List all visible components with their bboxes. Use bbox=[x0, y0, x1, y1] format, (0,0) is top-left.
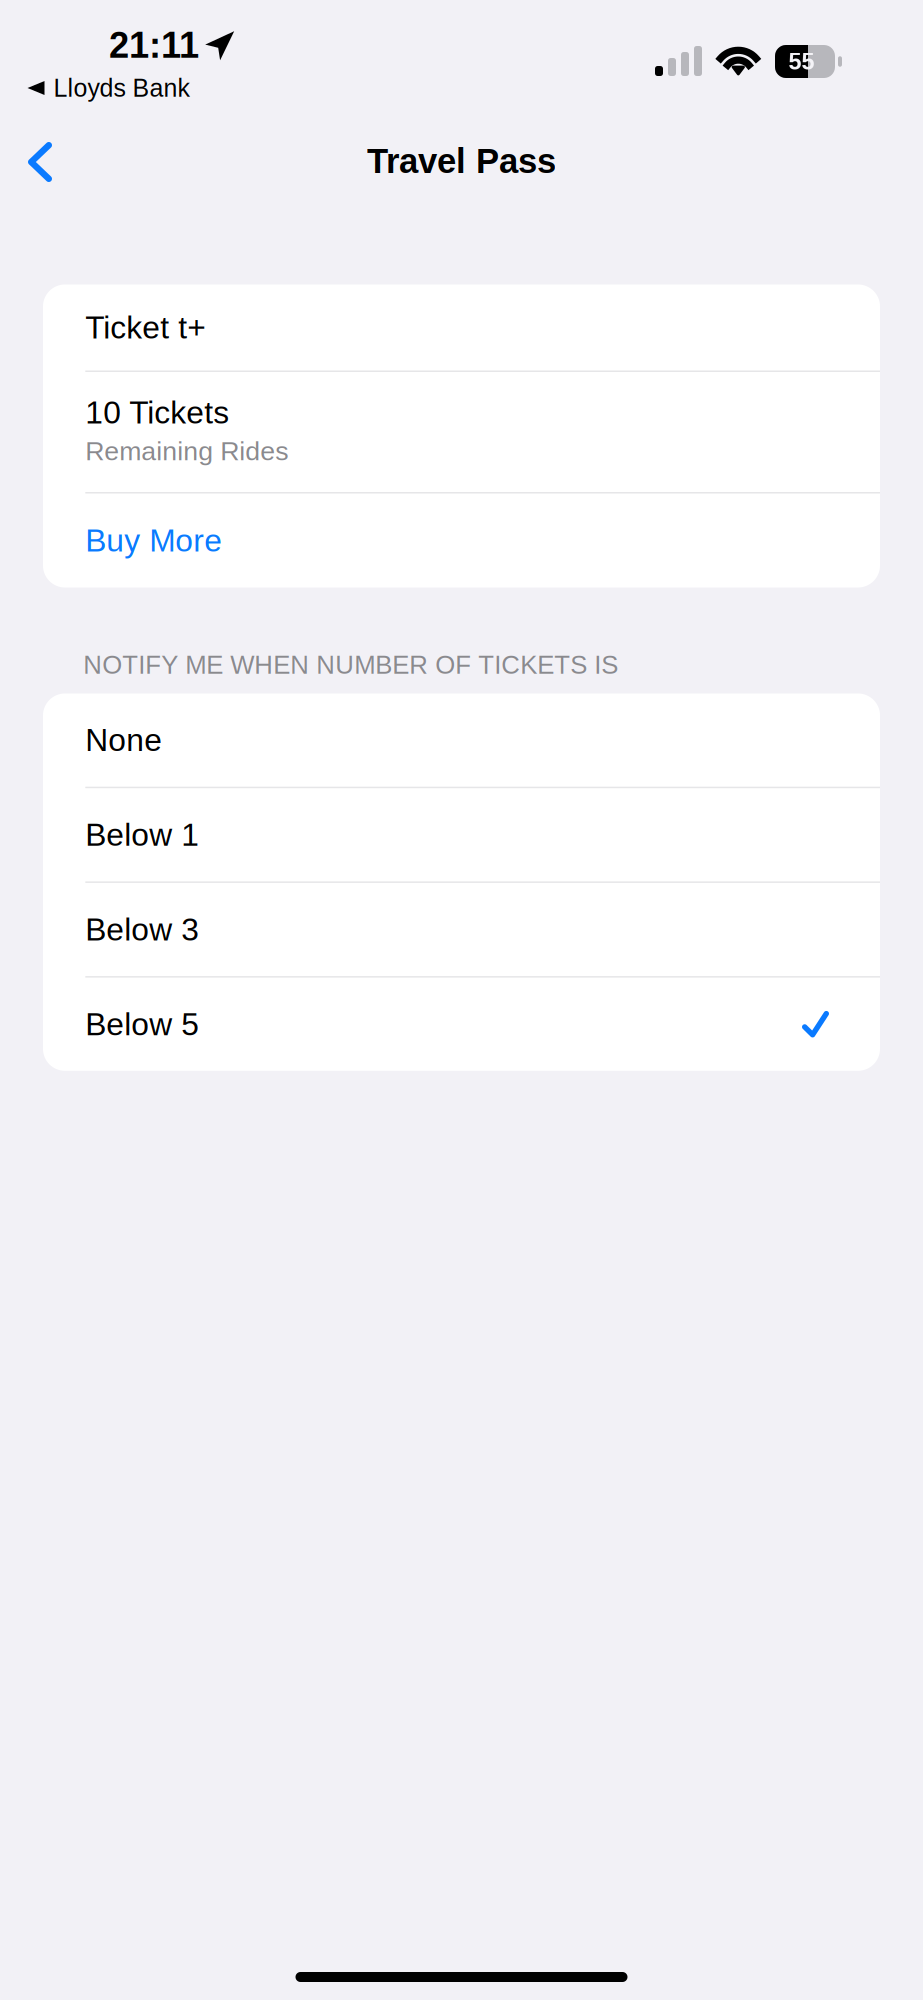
staticText: Lloyds Bank bbox=[53, 74, 189, 102]
button[interactable]: Below 5 bbox=[43, 978, 880, 1071]
button[interactable]: Below 3 bbox=[43, 883, 880, 976]
staticText: 10 Tickets bbox=[85, 395, 229, 430]
staticText: Below 5 bbox=[85, 1006, 199, 1042]
staticText: NOTIFY ME WHEN NUMBER OF TICKETS IS bbox=[83, 650, 618, 679]
button[interactable]: Ticket t+ bbox=[43, 284, 880, 370]
staticText: 55 bbox=[788, 48, 814, 75]
staticText: Buy More bbox=[85, 523, 222, 558]
button[interactable]: Lloyds Bank bbox=[27, 73, 189, 103]
staticText: Below 1 bbox=[85, 817, 199, 853]
button[interactable]: Below 1 bbox=[43, 788, 880, 881]
button[interactable]: Back bbox=[0, 120, 86, 202]
button[interactable]: Buy More bbox=[43, 493, 880, 587]
staticText: None bbox=[85, 722, 162, 758]
staticText: 21:11 bbox=[109, 25, 199, 65]
staticText: Below 3 bbox=[85, 912, 199, 947]
button[interactable]: None bbox=[43, 693, 880, 787]
staticText: Ticket t+ bbox=[85, 310, 206, 345]
staticText: Remaining Rides bbox=[85, 436, 288, 466]
button[interactable]: 10 Tickets bbox=[43, 372, 880, 492]
staticText: Travel Pass bbox=[367, 142, 556, 180]
